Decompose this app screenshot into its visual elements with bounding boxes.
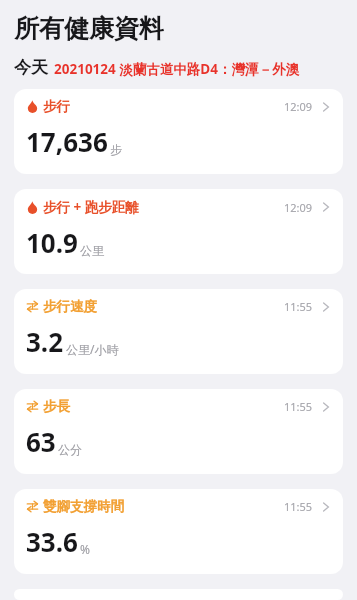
staticText: 12:09 [284, 99, 313, 114]
other: Show details [320, 201, 332, 213]
other: Show details [320, 301, 332, 313]
staticText: 雙腳支撐時間 [43, 498, 124, 515]
staticText: 步行 [43, 98, 70, 115]
button[interactable]: 雙腳支撐時間 [14, 489, 343, 574]
staticText: % [80, 541, 90, 557]
staticText: 公里 [80, 243, 104, 258]
other: Show details [320, 401, 332, 413]
staticText: 11:55 [284, 299, 313, 314]
staticText: 步 [110, 142, 122, 157]
staticText: 公里/小時 [66, 341, 119, 357]
staticText: 10.9 [26, 225, 78, 260]
other: Show details [320, 101, 332, 113]
staticText: 11:55 [284, 399, 313, 414]
button[interactable]: 步行 + 跑步距離 [14, 189, 343, 274]
staticText: 步長 [43, 398, 70, 415]
staticText: 3.2 [26, 324, 64, 359]
staticText: 63 [26, 424, 56, 459]
button[interactable]: 步長 [14, 389, 343, 474]
staticText: 20210124 淡蘭古道中路D4：灣潭－外澳 [54, 60, 299, 78]
staticText: 12:09 [284, 200, 313, 215]
staticText: 11:55 [284, 499, 313, 514]
button[interactable]: 步行速度 [14, 289, 343, 374]
button[interactable]: 步行 [14, 89, 343, 174]
staticText: 33.6 [26, 524, 78, 559]
staticText: 步行速度 [43, 298, 97, 315]
staticText: 17,636 [26, 124, 108, 159]
staticText: 步行 + 跑步距離 [43, 198, 139, 216]
staticText: 今天 [14, 57, 48, 78]
staticText: 所有健康資料 [14, 13, 164, 44]
staticText: 公分 [58, 442, 82, 457]
other: Show details [320, 501, 332, 513]
